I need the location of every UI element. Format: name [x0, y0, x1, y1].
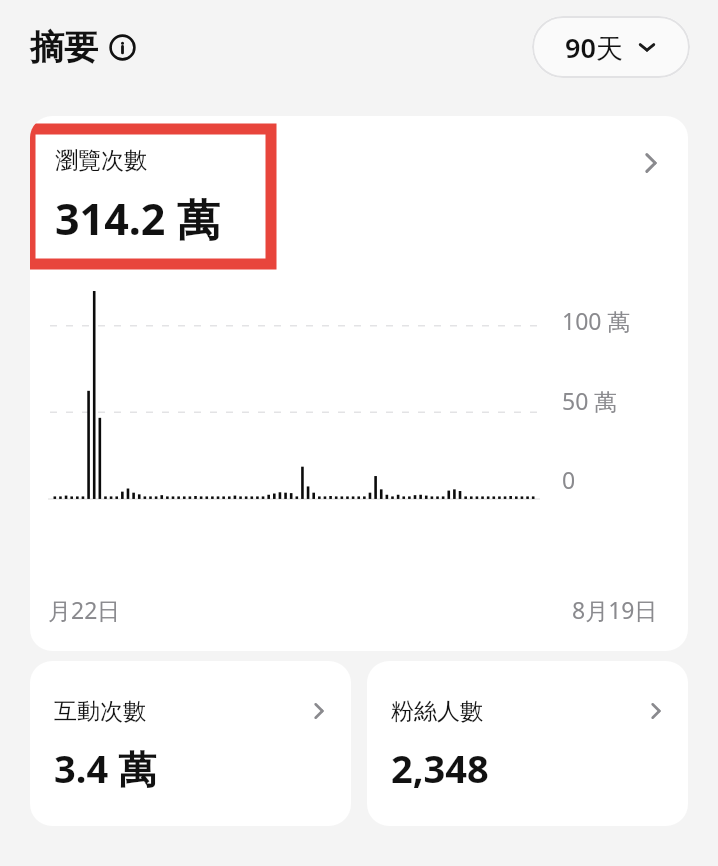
- button[interactable]: 粉絲人數: [367, 661, 688, 826]
- staticText: 互動次數: [54, 697, 146, 726]
- staticText: 摘要: [30, 26, 98, 69]
- button[interactable]: 互動次數: [30, 661, 351, 826]
- staticText: 2,348: [391, 742, 489, 794]
- staticText: 90天: [565, 29, 623, 66]
- staticText: 月22日: [48, 594, 121, 625]
- staticText: 3.4 萬: [54, 742, 157, 794]
- staticText: 314.2 萬: [55, 189, 220, 248]
- button[interactable]: 瀏覽次數: [30, 116, 688, 651]
- button[interactable]: 摘要: [30, 26, 136, 69]
- staticText: 瀏覽次數: [55, 146, 147, 175]
- staticText: 50 萬: [562, 385, 618, 416]
- button[interactable]: 90天: [532, 16, 690, 78]
- staticText: 0: [562, 464, 576, 495]
- staticText: 8月19日: [572, 594, 658, 625]
- staticText: 100 萬: [562, 305, 631, 336]
- button[interactable]: Information: [109, 34, 136, 61]
- staticText: 粉絲人數: [391, 697, 483, 726]
